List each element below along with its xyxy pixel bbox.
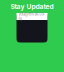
staticText: Stay Updated: [10, 2, 53, 11]
staticText: you@email.com: [18, 12, 44, 21]
